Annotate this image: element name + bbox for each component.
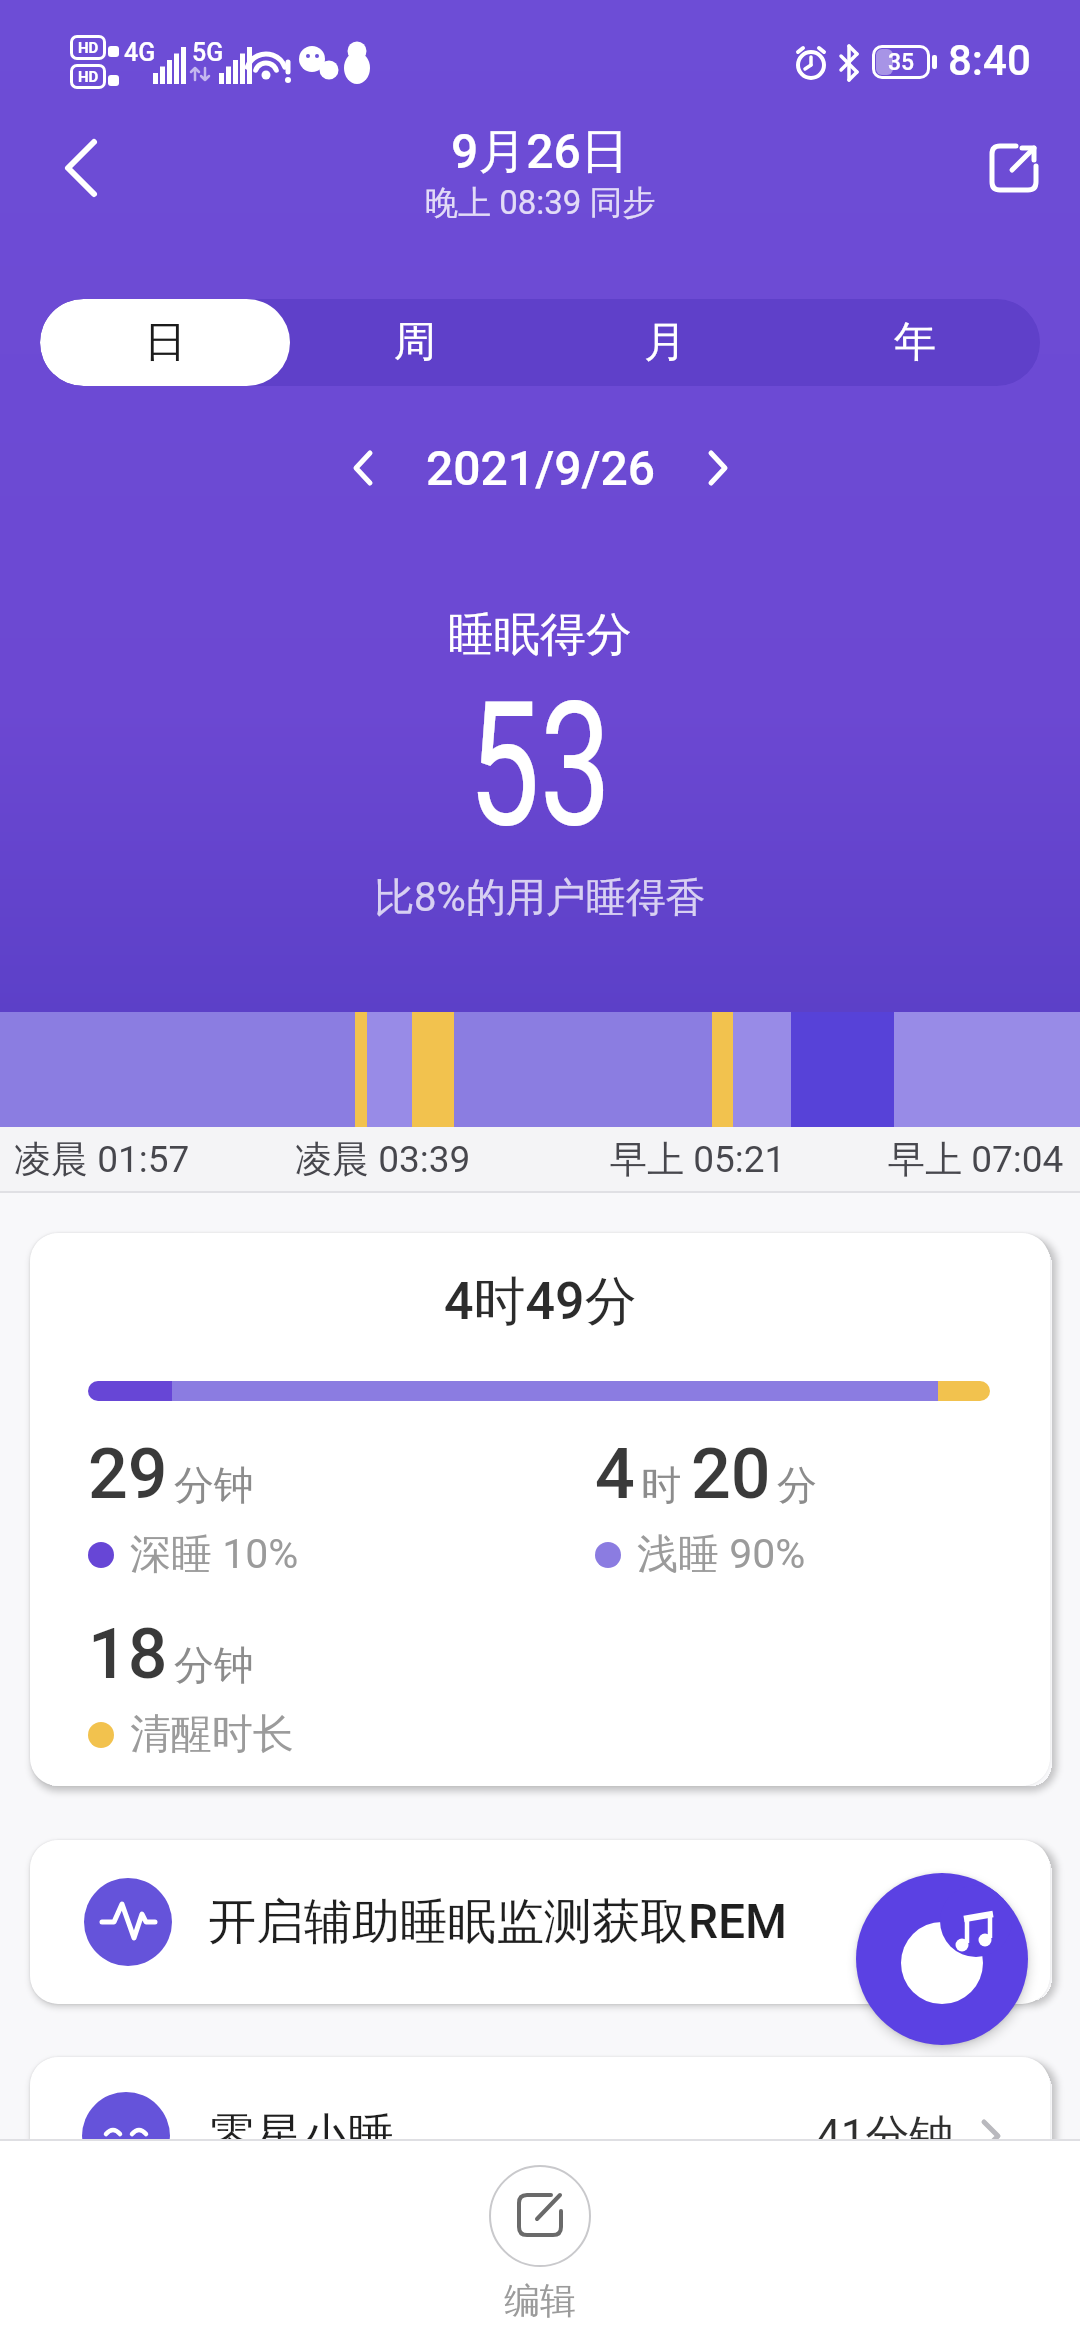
- staticText: 比8%的用户睡得香: [374, 872, 706, 922]
- staticText: 分钟: [174, 1640, 254, 1690]
- button[interactable]: [856, 1873, 1028, 2045]
- button[interactable]: [693, 444, 741, 492]
- staticText: 凌晨 01:57: [14, 1136, 190, 1183]
- staticText: 编辑: [504, 2278, 576, 2323]
- button[interactable]: [976, 132, 1048, 204]
- staticText: 日: [144, 316, 186, 369]
- staticText: 周: [394, 316, 436, 369]
- staticText: 2021/9/26: [426, 440, 655, 496]
- staticText: 4时49分: [444, 1269, 637, 1335]
- staticText: 零星小睡: [210, 2107, 394, 2165]
- button[interactable]: [340, 444, 388, 492]
- staticText: 分: [777, 1460, 817, 1510]
- staticText: 35: [888, 49, 915, 76]
- button[interactable]: [46, 132, 118, 204]
- staticText: 53: [468, 664, 612, 866]
- staticText: 5G: [192, 38, 224, 67]
- staticText: 9月26日: [451, 122, 629, 182]
- staticText: 深睡 10%: [130, 1529, 299, 1581]
- staticText: 4G: [124, 38, 156, 67]
- staticText: 分钟: [174, 1460, 254, 1510]
- staticText: 浅睡 90%: [637, 1529, 806, 1581]
- staticText: 早上 05:21: [610, 1136, 786, 1183]
- staticText: 睡眠得分: [448, 606, 632, 664]
- button[interactable]: 周: [290, 299, 540, 386]
- staticText: HD: [78, 68, 99, 86]
- staticText: 凌晨 03:39: [295, 1136, 471, 1183]
- staticText: 41分钟: [816, 2109, 954, 2164]
- button[interactable]: [489, 2165, 591, 2267]
- button[interactable]: 月: [540, 299, 790, 386]
- staticText: 时: [641, 1460, 681, 1510]
- staticText: HD: [78, 39, 99, 57]
- button[interactable]: 零星小睡: [30, 2057, 1050, 2257]
- staticText: 29: [88, 1433, 168, 1515]
- staticText: 年: [894, 316, 936, 369]
- staticText: 早上 07:04: [888, 1136, 1064, 1183]
- staticText: 清醒时长: [130, 1709, 294, 1761]
- staticText: 月: [644, 316, 686, 369]
- staticText: 8:40: [948, 36, 1031, 85]
- staticText: 晚上 08:39 同步: [425, 182, 656, 224]
- button[interactable]: 日: [40, 299, 290, 386]
- staticText: 18: [88, 1613, 168, 1695]
- button[interactable]: 年: [790, 299, 1040, 386]
- staticText: 20: [691, 1433, 771, 1515]
- staticText: 4: [595, 1433, 635, 1515]
- staticText: 开启辅助睡眠监测获取REM: [208, 1892, 788, 1952]
- button[interactable]: 开启辅助睡眠监测获取REM: [30, 1840, 1050, 2004]
